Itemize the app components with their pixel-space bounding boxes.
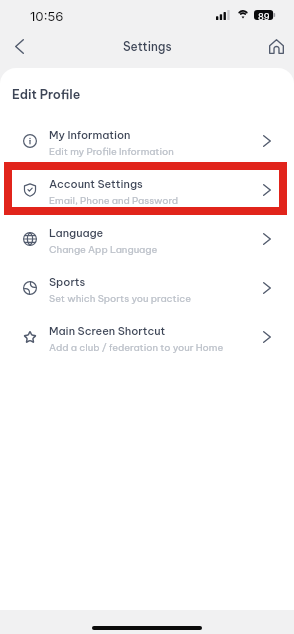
staticText: Email, Phone and Password bbox=[49, 194, 179, 206]
staticText: 10:56 bbox=[30, 8, 64, 24]
staticText: Add a club / federation to your Home bbox=[49, 341, 224, 353]
button[interactable]: Language bbox=[0, 212, 294, 261]
staticText: Set which Sports you practice bbox=[49, 292, 191, 304]
staticText: 89 bbox=[258, 11, 270, 22]
staticText: Language bbox=[49, 226, 104, 240]
button[interactable]: Back bbox=[8, 35, 30, 57]
staticText: Change App Language bbox=[49, 243, 158, 255]
button[interactable]: Home bbox=[265, 35, 287, 57]
staticText: Account Settings bbox=[49, 177, 143, 191]
button[interactable]: My Information bbox=[0, 114, 294, 163]
staticText: My Information bbox=[49, 128, 131, 142]
button[interactable]: Sports bbox=[0, 261, 294, 310]
staticText: Edit my Profile Information bbox=[49, 145, 174, 157]
staticText: Edit Profile bbox=[12, 87, 81, 103]
staticText: Sports bbox=[49, 275, 86, 289]
button[interactable]: Account Settings bbox=[0, 163, 294, 212]
staticText: Settings bbox=[123, 39, 172, 54]
staticText: Main Screen Shortcut bbox=[49, 324, 166, 338]
button[interactable]: Main Screen Shortcut bbox=[0, 310, 294, 359]
